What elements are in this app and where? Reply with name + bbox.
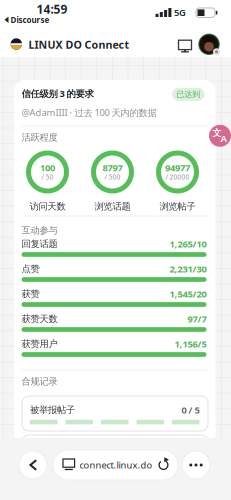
- button[interactable]: connect.linux.do: [53, 450, 178, 480]
- staticText: 互动参与: [21, 225, 57, 236]
- staticText: 14:59: [36, 1, 67, 17]
- staticText: 1,156/5: [174, 338, 206, 350]
- staticText: @AdamIIII · 过去 100 天内的数据: [21, 106, 156, 119]
- staticText: 回复话题: [21, 238, 57, 250]
- staticText: Discourse: [10, 14, 49, 25]
- staticText: 文: [212, 127, 221, 139]
- staticText: 获赞: [21, 288, 39, 300]
- staticText: 94977: [165, 161, 190, 174]
- staticText: 访问天数: [29, 201, 65, 212]
- button[interactable]: Translate: [209, 125, 231, 147]
- button[interactable]: Back: [19, 451, 47, 479]
- staticText: 点赞: [21, 263, 39, 275]
- staticText: 0 / 5: [181, 404, 199, 416]
- staticText: LINUX DO Connect: [28, 37, 129, 52]
- staticText: 信任级别 3 的要求: [21, 87, 93, 100]
- staticText: A: [220, 132, 226, 145]
- staticText: 8797: [102, 161, 122, 174]
- staticText: 5G: [174, 6, 186, 19]
- staticText: / 20000: [165, 173, 189, 181]
- staticText: 浏览话题: [94, 201, 130, 212]
- button[interactable]: More: [182, 451, 210, 479]
- staticText: 被举报帖子: [30, 404, 75, 416]
- staticText: / 50: [41, 173, 53, 181]
- staticText: 1,545/20: [169, 288, 206, 300]
- staticText: 浏览帖子: [159, 201, 195, 212]
- button[interactable]: Present: [174, 34, 195, 55]
- button[interactable]: Profile: [198, 33, 220, 55]
- staticText: 获赞用户: [21, 338, 57, 350]
- staticText: 100: [40, 161, 55, 174]
- staticText: 活跃程度: [21, 132, 57, 143]
- staticText: 2,231/30: [169, 263, 206, 275]
- staticText: 已达到: [176, 89, 200, 99]
- staticText: connect.linux.do: [79, 459, 152, 471]
- staticText: 获赞天数: [21, 313, 57, 325]
- staticText: 合规记录: [21, 376, 57, 387]
- staticText: / 500: [104, 173, 120, 181]
- staticText: 97/7: [187, 313, 206, 325]
- staticText: 1,265/10: [169, 238, 206, 250]
